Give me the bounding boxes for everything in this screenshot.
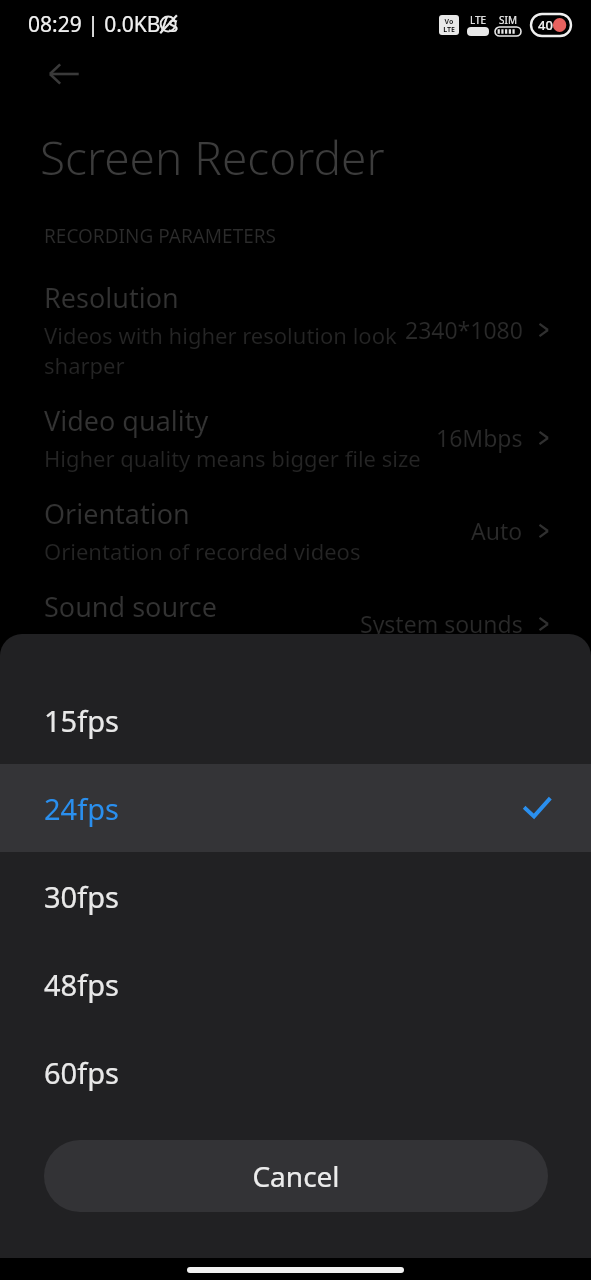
staticText: System sounds or microphone: [44, 629, 359, 659]
button[interactable]: Orientation: [0, 491, 591, 570]
staticText: Screen Recorder: [40, 126, 385, 189]
button[interactable]: Cancel: [44, 1140, 548, 1212]
staticText: Orientation: [44, 495, 190, 532]
button[interactable]: Back: [38, 48, 90, 100]
staticText: SIM: [499, 13, 517, 27]
staticText: 08:29 | 0.0KB/s: [28, 10, 179, 39]
button[interactable]: Video quality: [0, 398, 591, 477]
staticText: 60fps: [44, 1053, 119, 1092]
staticText: System sounds: [360, 608, 523, 639]
staticText: Higher quality means bigger file size: [44, 443, 421, 473]
staticText: 48fps: [44, 965, 119, 1004]
staticText: 30fps: [44, 877, 119, 916]
staticText: 24fps: [44, 789, 119, 828]
staticText: Cancel: [252, 1157, 340, 1195]
button[interactable]: Sound source: [0, 584, 591, 663]
staticText: Vo LTE: [443, 17, 455, 34]
staticText: 15fps: [44, 701, 119, 740]
staticText: 40: [538, 16, 553, 34]
staticText: Auto: [471, 515, 523, 546]
staticText: Orientation of recorded videos: [44, 536, 361, 566]
button[interactable]: 30fps: [0, 852, 591, 940]
staticText: RECORDING PARAMETERS: [44, 223, 277, 249]
staticText: Resolution: [44, 279, 179, 316]
button[interactable]: 24fps: [0, 764, 591, 852]
staticText: 2340*1080: [405, 314, 523, 345]
button[interactable]: 15fps: [0, 676, 591, 764]
button[interactable]: 48fps: [0, 940, 591, 1028]
staticText: Video quality: [44, 402, 209, 439]
button[interactable]: 60fps: [0, 1028, 591, 1116]
staticText: Sound source: [44, 588, 217, 625]
button[interactable]: Resolution: [0, 275, 591, 384]
staticText: Videos with higher resolution look sharp…: [44, 320, 397, 380]
staticText: 16Mbps: [436, 422, 523, 453]
staticText: LTE: [470, 13, 487, 27]
